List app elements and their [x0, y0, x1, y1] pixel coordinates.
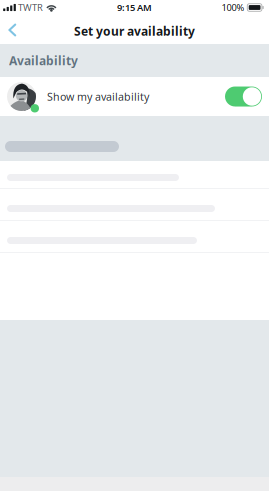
staticText: Availability	[9, 52, 78, 68]
staticText: 9:15 AM	[117, 1, 152, 14]
staticText: Show my availability	[47, 89, 149, 104]
button[interactable]: Show my availability	[0, 77, 269, 116]
button[interactable]: Back	[0, 19, 31, 42]
staticText: TWTR	[18, 1, 43, 14]
staticText: 100%	[221, 1, 244, 14]
staticText: Set your availability	[74, 23, 195, 39]
